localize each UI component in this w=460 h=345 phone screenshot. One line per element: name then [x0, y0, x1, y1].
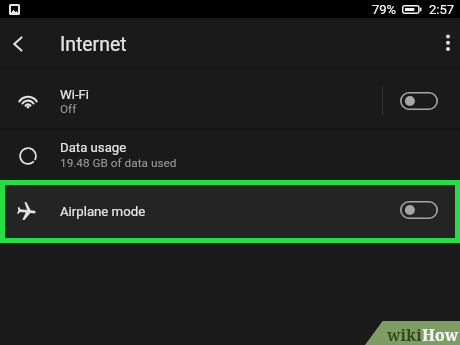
button[interactable]: Back: [0, 18, 40, 68]
button[interactable]: Wi-Fi: [0, 69, 460, 128]
staticText: How: [422, 324, 459, 345]
staticText: Internet: [60, 33, 127, 56]
staticText: 2:57: [429, 2, 455, 17]
staticText: 79%: [372, 2, 397, 17]
button[interactable]: Toggle Wi-Fi: [395, 85, 443, 117]
staticText: Wi-Fi: [60, 87, 90, 102]
staticText: Data usage: [60, 140, 127, 155]
button[interactable]: Toggle Airplane mode: [395, 194, 443, 226]
button[interactable]: Data usage: [0, 129, 460, 182]
staticText: Airplane mode: [60, 204, 146, 219]
button[interactable]: More options: [424, 18, 460, 68]
staticText: wiki: [387, 324, 422, 345]
staticText: Off: [60, 102, 77, 116]
button[interactable]: Airplane mode: [0, 185, 460, 238]
staticText: 19.48 GB of data used: [60, 156, 177, 170]
